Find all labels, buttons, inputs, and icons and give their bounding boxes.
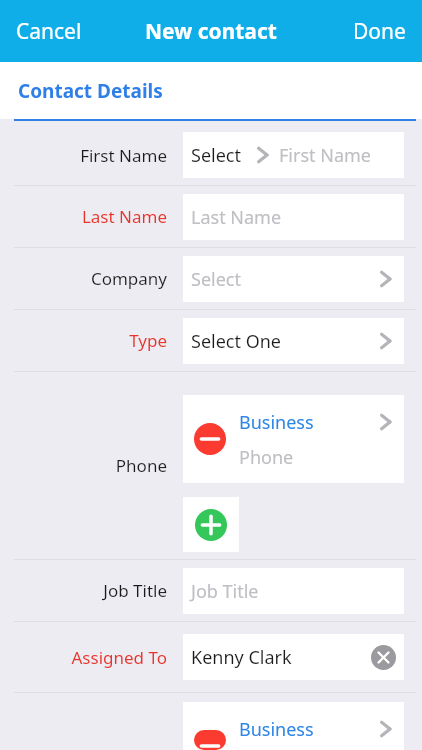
button[interactable]: Job Title xyxy=(0,560,422,621)
staticText: Last Name xyxy=(191,205,282,230)
staticText: Phone xyxy=(12,454,167,477)
staticText: First Name xyxy=(279,143,371,168)
button[interactable]: Assigned To xyxy=(0,622,422,692)
staticText: Business xyxy=(239,410,376,435)
button[interactable]: Clear assigned to xyxy=(371,645,396,670)
staticText: Job Title xyxy=(12,579,167,602)
button[interactable]: Remove phone xyxy=(194,423,226,455)
staticText: Job Title xyxy=(191,579,259,604)
staticText: Select xyxy=(191,267,241,292)
staticText: First Name xyxy=(12,144,167,167)
staticText: Business xyxy=(239,717,376,742)
button[interactable]: Type xyxy=(0,310,422,371)
button[interactable]: Last Name xyxy=(0,186,422,247)
button[interactable]: Company xyxy=(0,248,422,309)
staticText: New contact xyxy=(145,17,277,46)
button[interactable]: Cancel xyxy=(6,11,92,52)
button[interactable]: Remove phone xyxy=(194,730,226,750)
staticText: Done xyxy=(353,17,406,46)
staticText: Cancel xyxy=(16,17,82,46)
staticText: Company xyxy=(12,267,167,290)
button[interactable]: Add phone xyxy=(195,509,227,541)
staticText: Select One xyxy=(191,329,281,354)
staticText: Assigned To xyxy=(12,646,167,669)
staticText: Contact Details xyxy=(18,78,163,104)
button[interactable]: Business xyxy=(183,702,404,750)
button[interactable]: Done xyxy=(343,11,416,52)
staticText: Type xyxy=(12,329,167,352)
staticText: Phone xyxy=(239,445,294,470)
button[interactable]: Business xyxy=(183,395,404,483)
staticText: Kenny Clark xyxy=(191,645,292,670)
staticText: Last Name xyxy=(12,205,167,228)
staticText: Select xyxy=(191,143,241,168)
button[interactable]: First Name xyxy=(0,125,422,185)
